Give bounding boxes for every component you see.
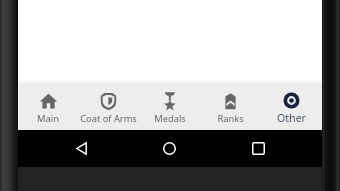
button[interactable]: Main (18, 84, 78, 130)
staticText: Main (37, 112, 59, 125)
button[interactable]: Other (261, 84, 322, 130)
button[interactable]: Back (18, 130, 144, 167)
staticText: Medals (154, 112, 186, 125)
button[interactable]: Ranks (200, 84, 261, 130)
button[interactable]: Coat of Arms (78, 84, 139, 130)
staticText: Ranks (217, 112, 244, 125)
button[interactable]: Medals (139, 84, 200, 130)
staticText: Other (277, 111, 306, 125)
button[interactable]: Home (144, 130, 195, 167)
staticText: Coat of Arms (80, 112, 137, 125)
button[interactable]: Recents (195, 130, 322, 167)
